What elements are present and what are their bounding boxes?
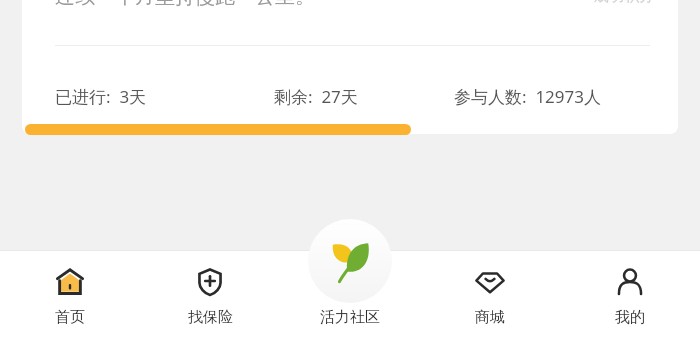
button[interactable]: 活力社区 bbox=[308, 219, 392, 303]
staticText: 商城 bbox=[475, 308, 505, 327]
button[interactable]: 找保险 bbox=[140, 250, 280, 342]
staticText: 剩余: 27天 bbox=[274, 85, 358, 108]
staticText: 连续一个月坚持慢跑一公里。 bbox=[55, 0, 315, 9]
staticText: 参与人数: 12973人 bbox=[454, 85, 602, 108]
staticText: 我的 bbox=[615, 308, 645, 327]
button[interactable]: 连续一个月坚持慢跑一公里。 bbox=[22, 0, 678, 134]
button[interactable]: 商城 bbox=[420, 250, 560, 342]
staticText: 找保险 bbox=[188, 308, 233, 327]
button[interactable]: 我的 bbox=[560, 250, 700, 342]
staticText: 已进行: 3天 bbox=[55, 85, 147, 108]
staticText: 成功积分 bbox=[594, 0, 654, 6]
button[interactable]: 首页 bbox=[0, 250, 140, 342]
staticText: 活力社区 bbox=[300, 308, 400, 327]
staticText: 首页 bbox=[55, 308, 85, 327]
